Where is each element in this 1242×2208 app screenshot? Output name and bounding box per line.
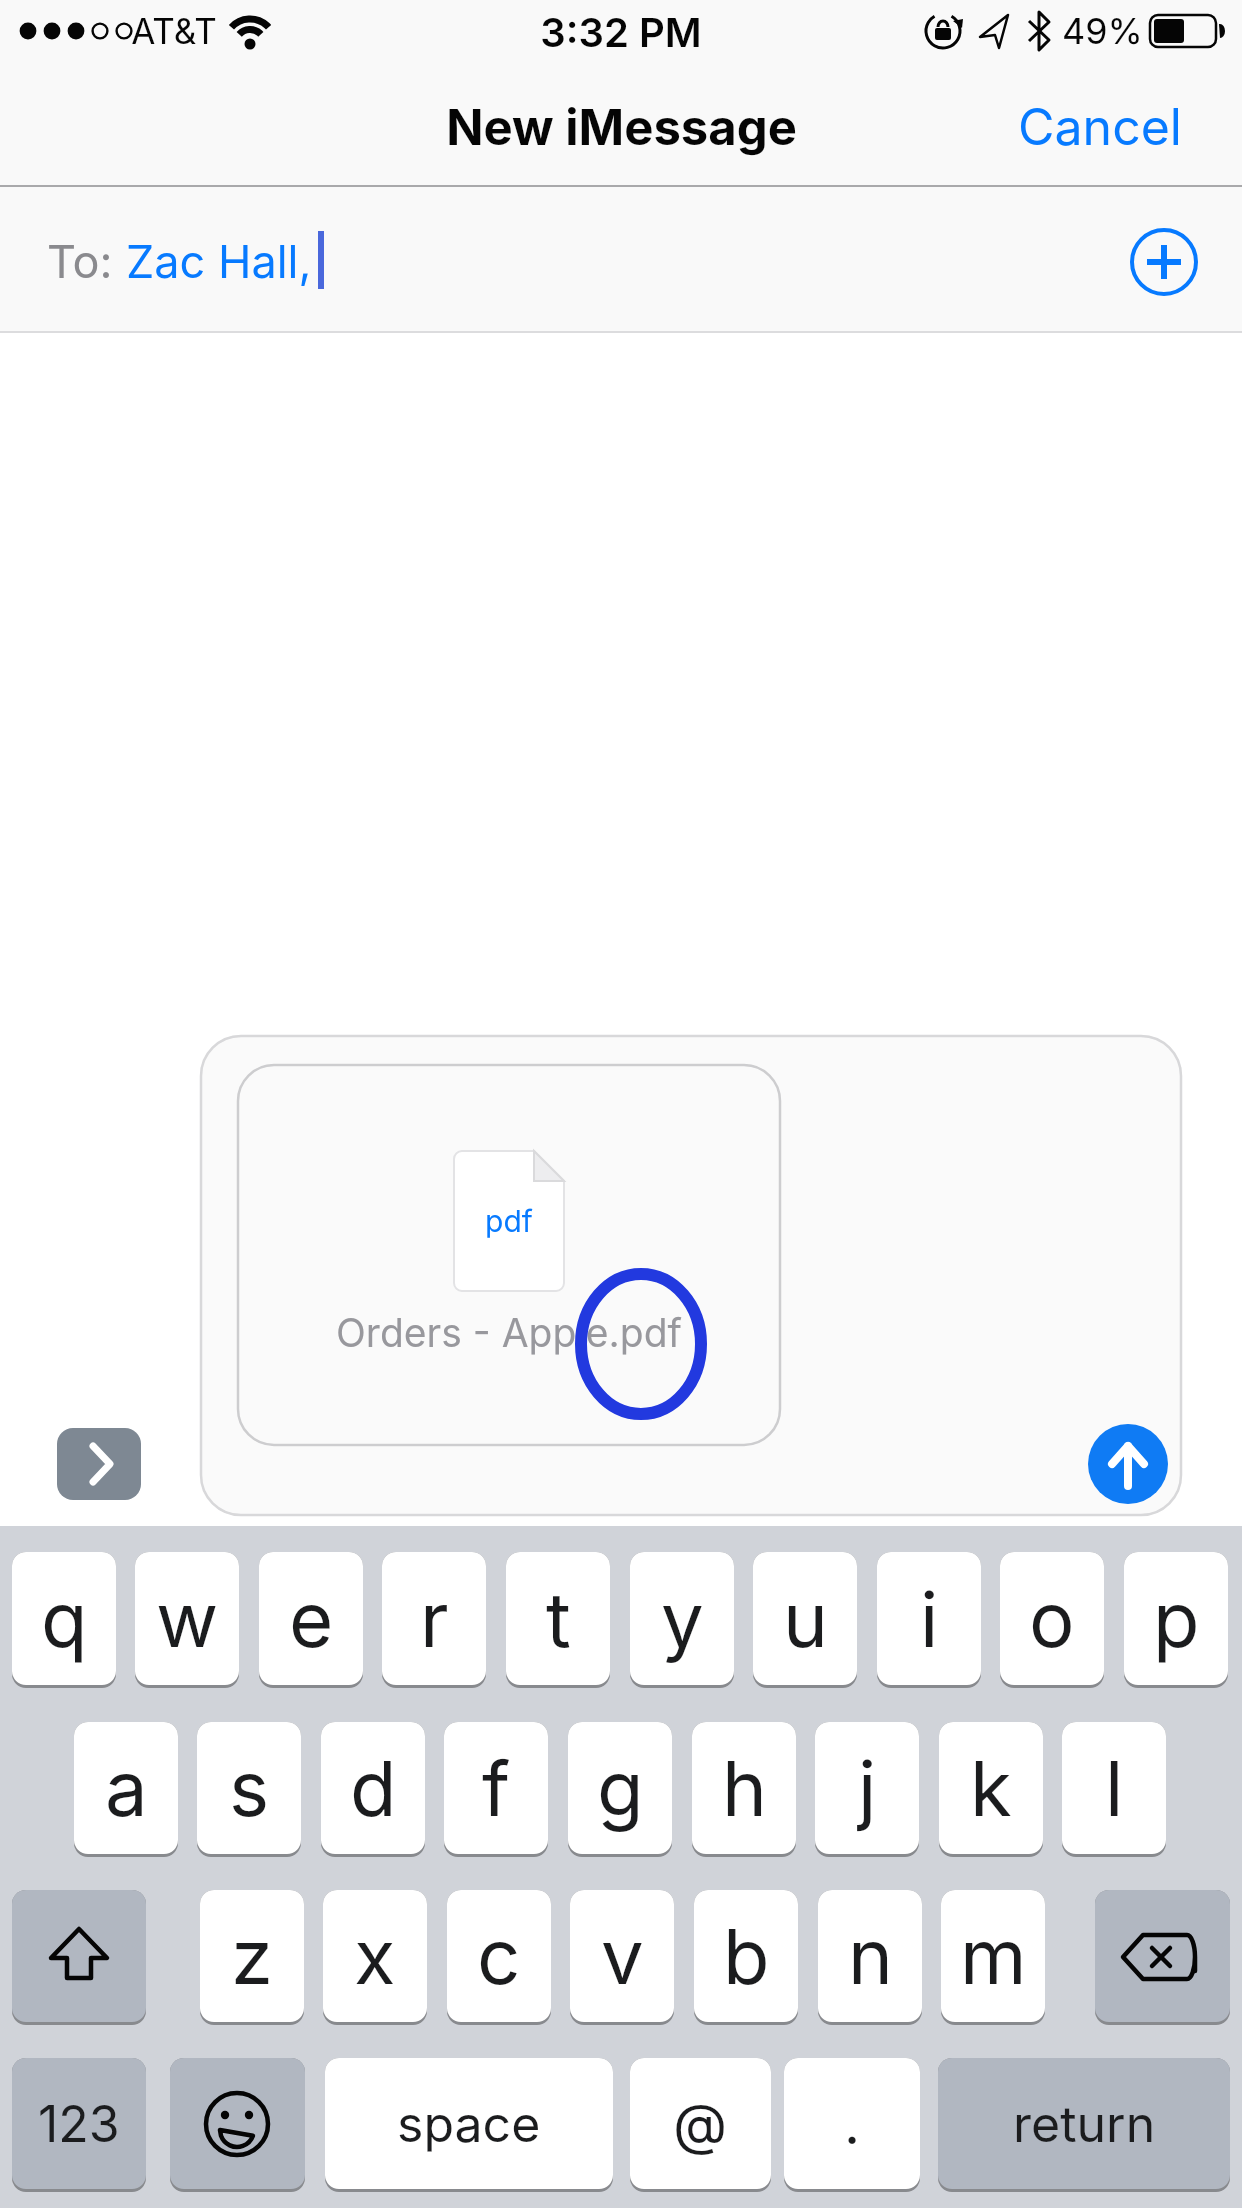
staticText: 3:32 PM [540,8,702,54]
staticText: l [1105,1742,1124,1834]
staticText: Orders - Apple.pdf [336,1309,682,1356]
staticText: Zac Hall, [126,234,312,288]
staticText: AT&T [131,10,217,52]
staticText: c [477,1910,521,2002]
staticText: a [105,1742,148,1834]
staticText: space [397,2094,541,2154]
staticText: t [546,1573,571,1665]
staticText: return [1013,2094,1156,2154]
staticText: z [231,1910,273,2002]
staticText: y [661,1573,704,1665]
staticText: To: [47,234,126,288]
staticText: b [723,1910,770,2002]
staticText: q [41,1573,88,1665]
staticText: g [597,1742,644,1834]
staticText: m [960,1910,1027,2002]
staticText: r [420,1573,449,1665]
staticText: 49% [1062,9,1143,53]
staticText: i [920,1573,939,1665]
staticText: f [482,1742,511,1834]
staticText: Cancel [1018,97,1182,157]
staticText: New iMessage [446,98,797,157]
staticText: n [848,1910,893,2002]
staticText: v [601,1910,644,2002]
staticText: . [844,2090,861,2158]
staticText: s [229,1742,270,1834]
staticText: k [970,1742,1012,1834]
staticText: pdf [485,1203,533,1239]
staticText: j [858,1742,877,1834]
staticText: p [1153,1573,1200,1665]
staticText: x [354,1910,396,2002]
staticText: h [722,1742,767,1834]
staticText: u [783,1573,828,1665]
staticText: w [156,1573,219,1665]
staticText: d [350,1742,397,1834]
staticText: o [1029,1573,1075,1665]
staticText: @ [673,2090,728,2158]
staticText: 123 [38,2094,120,2154]
staticText: e [289,1573,334,1665]
